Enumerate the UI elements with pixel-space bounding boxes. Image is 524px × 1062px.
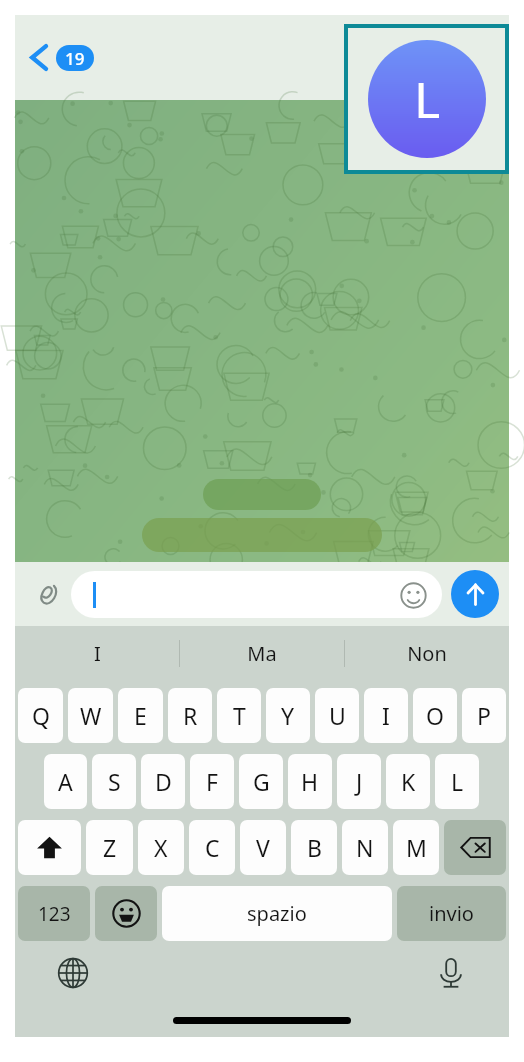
staticText: R bbox=[183, 700, 198, 731]
button[interactable]: O bbox=[413, 688, 457, 743]
staticText: E bbox=[134, 700, 147, 731]
button[interactable] bbox=[142, 518, 382, 552]
button[interactable]: Attach bbox=[25, 572, 69, 616]
staticText: O bbox=[426, 700, 444, 731]
button[interactable]: Shift bbox=[18, 820, 81, 875]
staticText: Ma bbox=[247, 640, 277, 667]
staticText: Y bbox=[281, 700, 295, 731]
button[interactable]: G bbox=[239, 754, 283, 809]
button[interactable]: Back bbox=[23, 38, 100, 77]
button[interactable]: invio bbox=[397, 886, 506, 941]
button[interactable]: V bbox=[240, 820, 286, 875]
staticText: Non bbox=[407, 640, 447, 667]
button[interactable]: Emoji bbox=[396, 578, 430, 612]
staticText: 123 bbox=[38, 901, 71, 927]
button[interactable]: Dictation bbox=[429, 951, 473, 995]
staticText: S bbox=[108, 766, 121, 797]
button[interactable]: Profile avatar L bbox=[344, 24, 509, 174]
staticText: I bbox=[382, 700, 390, 731]
staticText: U bbox=[329, 700, 346, 731]
button[interactable]: K bbox=[386, 754, 430, 809]
staticText: H bbox=[301, 766, 319, 797]
button[interactable]: X bbox=[138, 820, 184, 875]
staticText: Q bbox=[32, 700, 50, 731]
button[interactable]: P bbox=[462, 688, 506, 743]
staticText: A bbox=[58, 766, 73, 797]
button[interactable]: Non bbox=[345, 626, 509, 681]
staticText: K bbox=[401, 766, 416, 797]
button[interactable]: E bbox=[118, 688, 163, 743]
button[interactable]: Ma bbox=[180, 626, 344, 681]
button[interactable]: J bbox=[337, 754, 381, 809]
button[interactable]: A bbox=[44, 754, 87, 809]
button[interactable]: Y bbox=[266, 688, 310, 743]
staticText: T bbox=[233, 700, 246, 731]
button[interactable]: Emoji bbox=[71, 571, 442, 618]
button[interactable]: T bbox=[217, 688, 261, 743]
button[interactable]: H bbox=[288, 754, 332, 809]
button[interactable]: Backspace bbox=[444, 820, 506, 875]
staticText: D bbox=[155, 766, 172, 797]
button[interactable]: Send bbox=[451, 570, 499, 618]
button[interactable]: N bbox=[342, 820, 388, 875]
staticText: J bbox=[356, 766, 363, 797]
button[interactable] bbox=[203, 479, 321, 510]
button[interactable]: S bbox=[92, 754, 136, 809]
button[interactable]: I bbox=[364, 688, 408, 743]
staticText: Z bbox=[103, 832, 117, 863]
button[interactable]: B bbox=[291, 820, 337, 875]
staticText: V bbox=[256, 832, 270, 863]
staticText: P bbox=[477, 700, 491, 731]
staticText: 19 bbox=[65, 47, 85, 70]
button[interactable]: Q bbox=[18, 688, 63, 743]
button[interactable]: Change keyboard language bbox=[51, 951, 95, 995]
staticText: invio bbox=[429, 900, 474, 927]
button[interactable]: 123 bbox=[18, 886, 90, 941]
button[interactable]: U bbox=[315, 688, 359, 743]
staticText: N bbox=[356, 832, 374, 863]
staticText: G bbox=[253, 766, 270, 797]
staticText: X bbox=[154, 832, 168, 863]
staticText: F bbox=[206, 766, 218, 797]
staticText: C bbox=[205, 832, 220, 863]
button[interactable]: spazio bbox=[162, 886, 392, 941]
button[interactable]: L bbox=[435, 754, 479, 809]
staticText: M bbox=[406, 832, 427, 863]
staticText: L bbox=[414, 65, 441, 133]
staticText: spazio bbox=[247, 900, 307, 927]
staticText: B bbox=[307, 832, 322, 863]
button[interactable]: I bbox=[15, 626, 179, 681]
button[interactable]: C bbox=[189, 820, 235, 875]
staticText: L bbox=[451, 766, 464, 797]
button[interactable]: Z bbox=[86, 820, 133, 875]
button[interactable]: D bbox=[141, 754, 185, 809]
button[interactable]: F bbox=[190, 754, 234, 809]
button[interactable]: Emoji keyboard bbox=[95, 886, 157, 941]
button[interactable]: M bbox=[393, 820, 439, 875]
staticText: W bbox=[80, 700, 102, 731]
staticText: I bbox=[94, 640, 101, 667]
button[interactable]: R bbox=[168, 688, 212, 743]
button[interactable]: W bbox=[68, 688, 113, 743]
